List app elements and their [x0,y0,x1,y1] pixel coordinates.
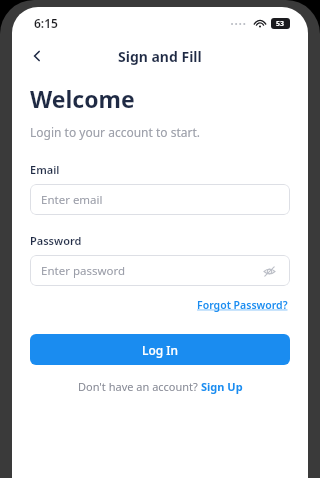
button[interactable]: Log In [30,334,290,365]
staticText: 53 [276,19,285,29]
button[interactable]: Toggle password visibility [259,261,279,281]
staticText: Forgot Password? [197,298,288,312]
staticText: Welcome [30,83,135,114]
staticText: Enter email [41,192,103,208]
staticText: 6:15 [34,15,58,31]
staticText: Sign and Fill [118,47,202,66]
button[interactable]: Enter email [30,184,290,215]
button[interactable]: Back [22,41,52,71]
button[interactable]: Enter password [30,255,290,286]
staticText: Login to your account to start. [30,124,200,140]
button[interactable]: Sign Up [201,379,243,394]
button[interactable]: Forgot Password? [195,296,290,314]
staticText: Sign Up [201,379,243,394]
staticText: Don't have an account? [78,379,201,394]
staticText: Enter password [41,263,126,279]
staticText: Password [30,233,82,248]
staticText: Email [30,162,60,177]
staticText: Log In [142,342,179,358]
